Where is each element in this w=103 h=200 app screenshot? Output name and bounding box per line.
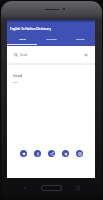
staticText: English To Haitian Dictionary [10,27,52,31]
staticText: Good [13,73,23,78]
button[interactable]: Good [13,73,95,83]
button[interactable]: RECENT [66,35,95,46]
staticText: Good [20,53,28,57]
staticText: bon [13,80,18,83]
other: Add word [84,53,88,57]
button[interactable]: Good [14,46,88,63]
button[interactable]: Open on web [76,150,83,157]
button[interactable]: Pronounce [34,150,41,157]
button[interactable]: HOME [7,35,37,46]
staticText: HOME [19,38,26,41]
button[interactable]: Favorite [20,150,27,157]
button[interactable]: Share [48,150,55,157]
button[interactable]: FAVORITE [37,35,66,46]
button[interactable]: Recents [76,186,80,190]
staticText: RECENT [76,38,85,41]
staticText: FAVORITE [46,38,57,41]
button[interactable]: Home [42,186,61,190]
button[interactable]: Back [23,186,27,190]
button[interactable]: Rate [62,150,69,157]
